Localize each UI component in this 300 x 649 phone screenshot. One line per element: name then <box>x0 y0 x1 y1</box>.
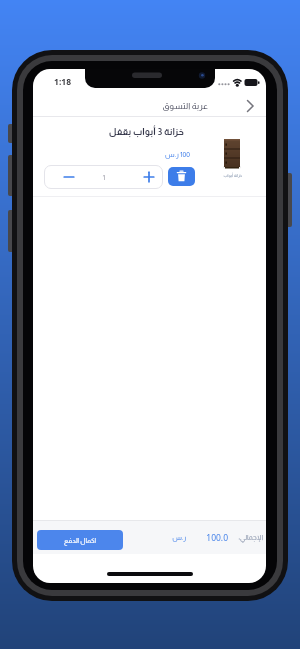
staticText: 1 <box>102 173 106 182</box>
staticText: 100.0 <box>206 532 228 544</box>
button[interactable] <box>52 165 86 189</box>
button[interactable]: اكمال الدفع <box>37 530 123 550</box>
button[interactable] <box>209 135 255 181</box>
button[interactable] <box>132 165 160 189</box>
staticText: الإجمالي: <box>238 534 263 542</box>
staticText: خزانة أبواب <box>223 173 242 178</box>
staticText: عربة التسوق <box>162 101 208 111</box>
staticText: خزانة 3 أبواب بقفل <box>108 126 184 137</box>
staticText: 100 ر.س <box>164 151 190 159</box>
button[interactable] <box>168 167 195 186</box>
staticText: اكمال الدفع <box>64 537 96 544</box>
staticText: ر.س <box>172 534 186 542</box>
button[interactable] <box>239 94 263 118</box>
staticText: 1:18 <box>54 76 71 88</box>
